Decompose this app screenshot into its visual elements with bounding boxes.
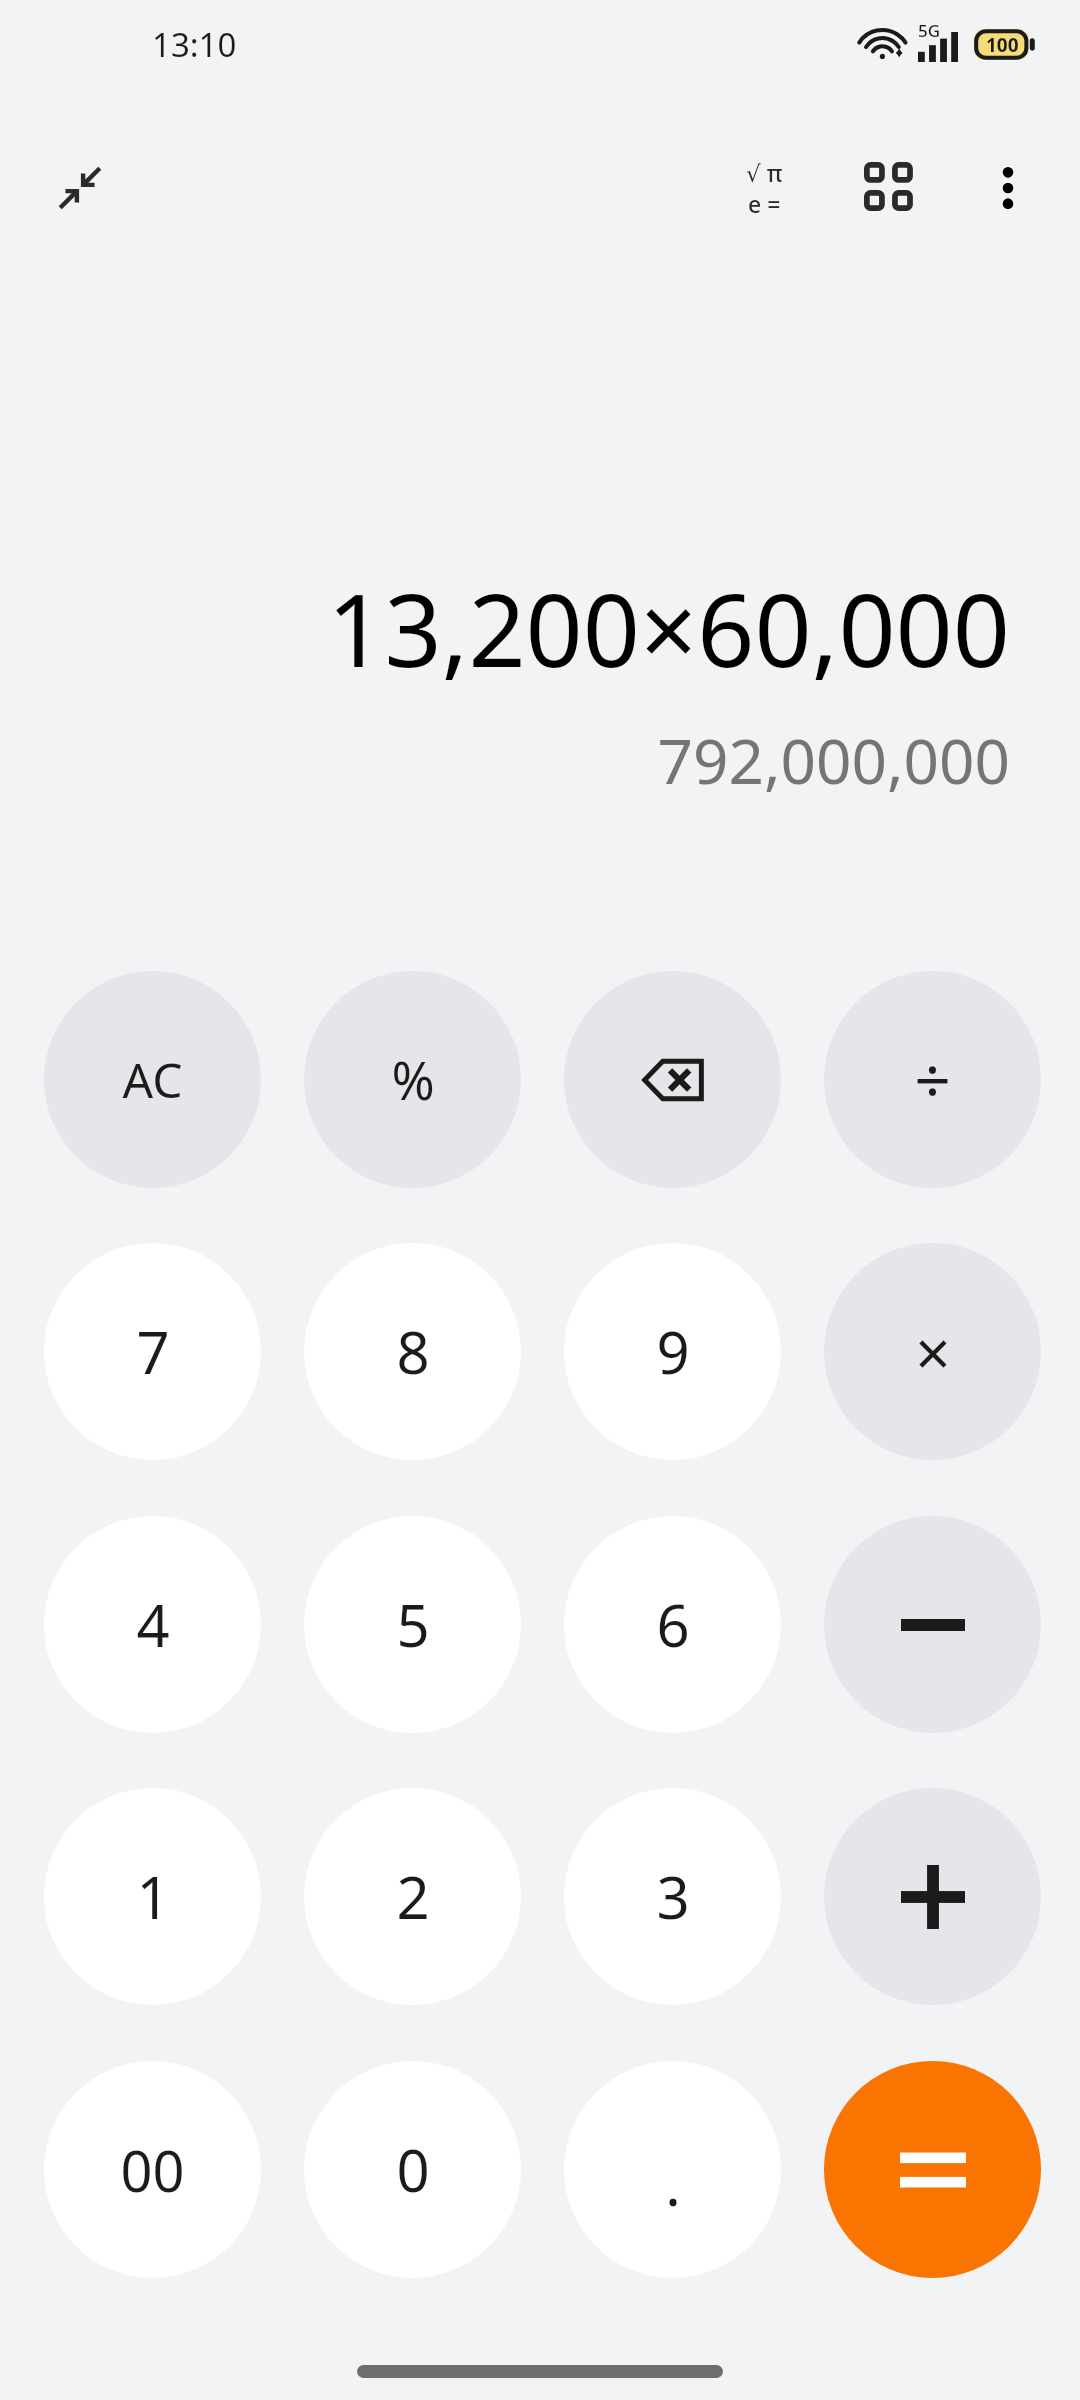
staticText: 1 <box>136 1857 170 1936</box>
button[interactable]: Percent <box>304 971 521 1188</box>
button[interactable]: Scientific mode <box>716 140 812 236</box>
staticText: 4 <box>136 1585 170 1664</box>
button[interactable]: Plus <box>824 1788 1041 2005</box>
button[interactable]: Backspace <box>564 971 781 1188</box>
button[interactable]: Decimal point <box>564 2061 781 2278</box>
staticText: . <box>665 2144 681 2223</box>
staticText: 13:10 <box>152 22 237 67</box>
button[interactable]: Unit converter <box>842 140 938 236</box>
button[interactable]: 3 <box>564 1788 781 2005</box>
staticText: 00 <box>120 2132 185 2208</box>
staticText: 100 <box>986 32 1019 58</box>
button[interactable]: Divide <box>824 971 1041 1188</box>
staticText: e = <box>748 188 781 219</box>
button[interactable]: Double zero <box>44 2061 261 2278</box>
button[interactable]: 8 <box>304 1243 521 1460</box>
button[interactable]: 9 <box>564 1243 781 1460</box>
staticText: 5G <box>918 19 941 42</box>
staticText: 2 <box>396 1857 430 1936</box>
button[interactable]: Minus <box>824 1516 1041 1733</box>
button[interactable]: 6 <box>564 1516 781 1733</box>
button[interactable]: Equals <box>824 2061 1041 2278</box>
staticText: ÷ <box>914 1036 951 1123</box>
staticText: 6 <box>656 1585 690 1664</box>
button[interactable]: 5 <box>304 1516 521 1733</box>
button[interactable]: 2 <box>304 1788 521 2005</box>
staticText: 0 <box>396 2130 430 2209</box>
staticText: 5 <box>396 1585 430 1664</box>
staticText: AC <box>122 1047 183 1112</box>
button[interactable]: 4 <box>44 1516 261 1733</box>
staticText: 3 <box>656 1857 690 1936</box>
button[interactable]: Multiply <box>824 1243 1041 1460</box>
button[interactable]: More options <box>960 140 1056 236</box>
button[interactable]: 7 <box>44 1243 261 1460</box>
staticText: % <box>391 1044 435 1115</box>
button[interactable]: All clear <box>44 971 261 1188</box>
button[interactable]: 0 <box>304 2061 521 2278</box>
button[interactable]: Collapse <box>32 140 128 236</box>
staticText: 7 <box>136 1312 170 1391</box>
staticText: 9 <box>656 1312 690 1391</box>
button[interactable]: 1 <box>44 1788 261 2005</box>
staticText: 13,200×60,000 <box>327 560 1010 696</box>
staticText: 8 <box>396 1312 430 1391</box>
staticText: 792,000,000 <box>657 718 1010 802</box>
staticText: × <box>915 1310 951 1394</box>
staticText: √ π <box>746 157 783 188</box>
